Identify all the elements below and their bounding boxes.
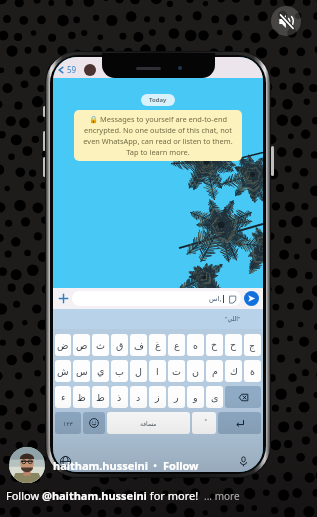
- button[interactable]: ه: [187, 334, 204, 356]
- button[interactable]: Send: [244, 291, 259, 306]
- staticText: ج: [249, 340, 256, 351]
- staticText: س: [76, 366, 88, 377]
- staticText: ف: [134, 340, 144, 351]
- staticText: ة: [250, 366, 255, 377]
- staticText: "اللي": [225, 315, 241, 323]
- button[interactable]: ن: [187, 360, 204, 382]
- button[interactable]: ء: [55, 386, 71, 408]
- staticText: ط: [96, 392, 105, 403]
- staticText: ث: [96, 340, 105, 351]
- button[interactable]: ب: [111, 360, 128, 382]
- staticText: ق: [116, 340, 124, 351]
- staticText: ع: [174, 340, 180, 351]
- staticText: haitham.husseini: [53, 458, 148, 473]
- staticText: ي: [97, 366, 105, 377]
- button[interactable]: Profile photo: [9, 447, 45, 483]
- staticText: Today: [149, 96, 167, 104]
- button[interactable]: Attach: [57, 292, 70, 305]
- button[interactable]: ط: [92, 386, 109, 408]
- button[interactable]: ت: [168, 360, 185, 382]
- button[interactable]: ر: [168, 386, 185, 408]
- button[interactable]: Return: [218, 412, 261, 434]
- button[interactable]: ض: [55, 334, 71, 356]
- staticText: ١٢٣: [63, 420, 73, 427]
- button[interactable]: ج: [244, 334, 261, 356]
- staticText: ح: [230, 340, 237, 351]
- staticText: Follow: [163, 458, 199, 473]
- staticText: ر: [174, 392, 179, 403]
- button[interactable]: ز: [149, 386, 166, 408]
- button[interactable]: ص: [73, 334, 90, 356]
- button[interactable]: خ: [206, 334, 223, 356]
- staticText: ب: [115, 366, 124, 377]
- staticText: ص: [76, 340, 88, 351]
- staticText: ه: [193, 340, 198, 351]
- staticText: ض: [57, 340, 69, 351]
- button[interactable]: ا: [149, 360, 166, 382]
- button[interactable]: ي: [92, 360, 109, 382]
- button[interactable]: و: [187, 386, 204, 408]
- button[interactable]: م: [206, 360, 223, 382]
- button[interactable]: ف: [130, 334, 147, 356]
- button[interactable]: ذ: [111, 386, 128, 408]
- staticText: •: [153, 458, 158, 473]
- button[interactable]: اس,: [72, 291, 241, 306]
- staticText: ظ: [77, 392, 86, 403]
- staticText: Follow: [6, 488, 42, 503]
- button[interactable]: ك: [225, 360, 242, 382]
- staticText: ... more: [204, 489, 240, 503]
- staticText: ء: [61, 392, 66, 403]
- staticText: 🔒 Messages to yourself are end-to-end en…: [79, 114, 237, 157]
- button[interactable]: Emoji: [83, 412, 105, 434]
- staticText: اس,: [209, 294, 222, 304]
- button[interactable]: Dictate: [237, 455, 250, 468]
- staticText: د: [136, 392, 141, 403]
- staticText: ذ: [117, 392, 122, 403]
- button[interactable]: ظ: [73, 386, 90, 408]
- staticText: ت: [172, 366, 181, 377]
- button[interactable]: ش: [55, 360, 71, 382]
- button[interactable]: غ: [149, 334, 166, 356]
- staticText: ك: [230, 366, 238, 377]
- staticText: ز: [155, 392, 160, 403]
- staticText: خ: [211, 340, 218, 351]
- button[interactable]: ْ: [192, 412, 216, 434]
- button[interactable]: ل: [130, 360, 147, 382]
- button[interactable]: Language: [59, 455, 72, 468]
- staticText: ن: [192, 366, 199, 377]
- button[interactable]: ق: [111, 334, 128, 356]
- button[interactable]: ث: [92, 334, 109, 356]
- button[interactable]: ى: [206, 386, 223, 408]
- button[interactable]: س: [73, 360, 90, 382]
- button[interactable]: ة: [244, 360, 261, 382]
- button[interactable]: Unmute: [271, 6, 301, 36]
- staticText: for more!: [147, 488, 199, 503]
- staticText: ش: [57, 366, 69, 377]
- staticText: ا: [156, 366, 159, 377]
- button[interactable]: مسافة: [107, 412, 190, 434]
- staticText: 59: [67, 64, 77, 75]
- staticText: م: [212, 366, 218, 377]
- staticText: @haitham.husseini: [42, 488, 147, 503]
- button[interactable]: ح: [225, 334, 242, 356]
- button[interactable]: ١٢٣: [55, 412, 81, 434]
- button[interactable]: د: [130, 386, 147, 408]
- button[interactable]: Backspace: [225, 386, 261, 408]
- staticText: ى: [211, 392, 219, 403]
- staticText: مسافة: [140, 420, 157, 427]
- staticText: و: [193, 392, 198, 403]
- staticText: ل: [135, 366, 142, 377]
- button[interactable]: ع: [168, 334, 185, 356]
- staticText: غ: [155, 340, 161, 351]
